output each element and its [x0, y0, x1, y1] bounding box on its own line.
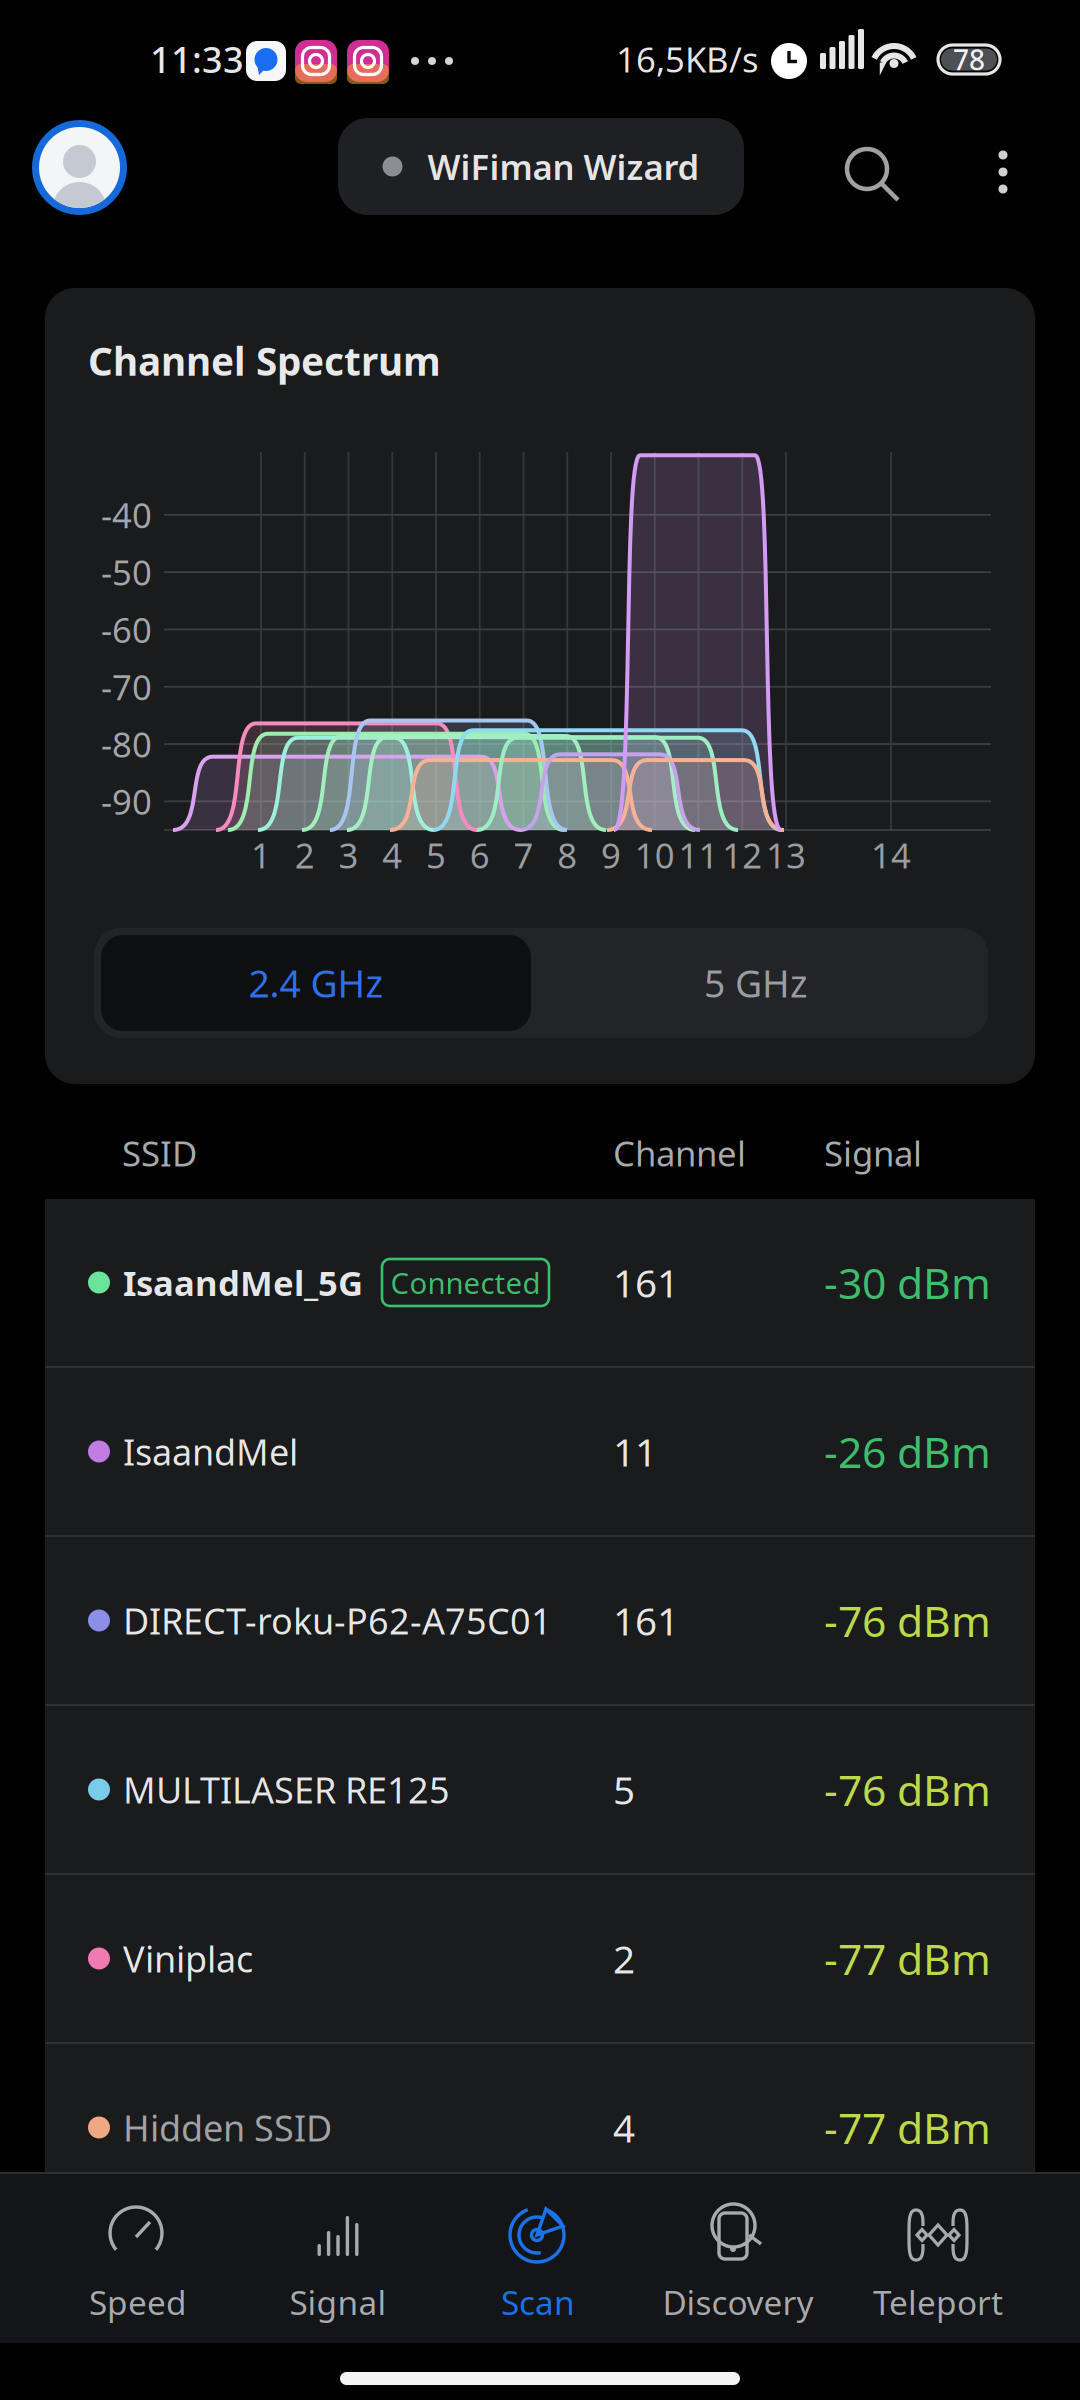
staticText: DIRECT-roku-P62-A75C01 — [123, 1597, 552, 1644]
staticText: -77 dBm — [824, 2099, 991, 2156]
staticText: 2 — [295, 832, 315, 878]
button[interactable]: WiFiman Wizard — [338, 118, 744, 215]
button[interactable]: MULTILASER RE125 — [45, 1706, 1035, 1873]
staticText: 11 — [613, 1426, 657, 1477]
staticText: -50 — [101, 549, 152, 595]
staticText: IsaandMel — [123, 1428, 298, 1475]
staticText: -90 — [101, 778, 152, 824]
staticText: 9 — [601, 832, 621, 878]
staticText: SSID — [122, 1130, 197, 1176]
staticText: 12 — [722, 832, 762, 878]
staticText: 11 — [678, 832, 718, 878]
staticText: Scan — [501, 2280, 575, 2324]
button[interactable]: 2.4 GHz — [101, 935, 531, 1031]
staticText: Hidden SSID — [123, 2104, 332, 2151]
staticText: -40 — [101, 492, 152, 538]
button[interactable]: Scan — [438, 2174, 638, 2343]
staticText: 8 — [557, 832, 577, 878]
staticText: 7 — [513, 832, 533, 878]
staticText: MULTILASER RE125 — [123, 1766, 450, 1813]
button[interactable]: Hidden SSID — [45, 2044, 1035, 2211]
staticText: 3 — [338, 832, 358, 878]
button[interactable]: Viniplac — [45, 1875, 1035, 2042]
staticText: WiFiman Wizard — [427, 143, 699, 189]
staticText: Teleport — [873, 2280, 1003, 2324]
staticText: 161 — [613, 1595, 679, 1646]
staticText: 2.4 GHz — [248, 958, 383, 1008]
staticText: Signal — [824, 1130, 922, 1176]
staticText: -80 — [101, 721, 152, 767]
staticText: Viniplac — [123, 1935, 253, 1982]
button[interactable]: Signal — [238, 2174, 438, 2343]
staticText: 14 — [871, 832, 911, 878]
button[interactable]: Profile — [20, 108, 139, 227]
staticText: Signal — [289, 2280, 386, 2324]
staticText: 5 — [613, 1764, 635, 1815]
staticText: -76 dBm — [824, 1761, 991, 1818]
staticText: 11:33 — [150, 35, 244, 83]
staticText: -30 dBm — [824, 1254, 991, 1311]
staticText: 6 — [470, 832, 490, 878]
staticText: 10 — [635, 832, 675, 878]
staticText: 13 — [766, 832, 806, 878]
staticText: 4 — [613, 2102, 635, 2153]
staticText: -77 dBm — [824, 1930, 991, 1987]
button[interactable]: IsaandMel — [45, 1368, 1035, 1535]
staticText: Connected — [390, 1263, 540, 1302]
button[interactable]: Discovery — [638, 2174, 838, 2343]
staticText: -70 — [101, 664, 152, 710]
staticText: Channel Spectrum — [88, 335, 441, 386]
staticText: 4 — [382, 832, 402, 878]
staticText: 16,5KB/s — [616, 36, 759, 82]
staticText: 5 GHz — [704, 958, 808, 1008]
staticText: IsaandMel_5G — [123, 1259, 363, 1305]
button[interactable]: 5 GHz — [531, 935, 981, 1031]
button[interactable]: More options — [958, 125, 1048, 219]
staticText: 78 — [953, 41, 985, 78]
staticText: Speed — [89, 2280, 187, 2324]
button[interactable]: IsaandMel_5G — [45, 1199, 1035, 1366]
button[interactable]: Speed — [38, 2174, 238, 2343]
button[interactable]: Search — [827, 129, 917, 219]
staticText: Discovery — [662, 2280, 813, 2324]
staticText: 1 — [251, 832, 271, 878]
staticText: -60 — [101, 606, 152, 652]
button[interactable]: DIRECT-roku-P62-A75C01 — [45, 1537, 1035, 1704]
staticText: 5 — [426, 832, 446, 878]
staticText: Channel — [613, 1130, 746, 1176]
staticText: -76 dBm — [824, 1592, 991, 1649]
button[interactable]: Teleport — [838, 2174, 1038, 2343]
staticText: 2 — [613, 1933, 635, 1984]
staticText: -26 dBm — [824, 1423, 991, 1480]
staticText: 161 — [613, 1257, 679, 1308]
